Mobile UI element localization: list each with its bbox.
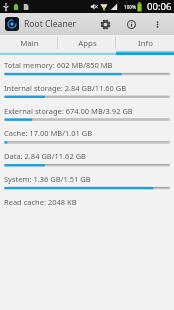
- staticText: Apps: [78, 38, 97, 49]
- button[interactable]: System: 1.36 GB/1.51 GB: [0, 169, 174, 192]
- staticText: 00:06: [147, 0, 172, 13]
- button[interactable]: Cache: 17.00 MB/1.01 GB: [0, 123, 174, 146]
- staticText: Cache: 17.00 MB/1.01 GB: [4, 128, 93, 138]
- button[interactable]: Apps: [58, 35, 116, 55]
- button[interactable]: Settings: [92, 13, 118, 35]
- staticText: 100%: [124, 4, 137, 10]
- staticText: System: 1.36 GB/1.51 GB: [4, 174, 91, 184]
- button[interactable]: Main: [0, 35, 58, 55]
- button[interactable]: More options: [144, 13, 170, 35]
- staticText: External storage: 674.00 MB/3.92 GB: [4, 106, 133, 116]
- button[interactable]: Data: 2.84 GB/11.62 GB: [0, 146, 174, 169]
- button[interactable]: App icon: [5, 17, 19, 31]
- button[interactable]: Read cache: 2048 KB: [0, 192, 174, 215]
- button[interactable]: Info: [116, 35, 174, 55]
- button[interactable]: Total memory: 602 MB/850 MB: [0, 55, 174, 78]
- staticText: Internal storage: 2.84 GB/11.60 GB: [4, 83, 127, 93]
- staticText: Main: [20, 38, 39, 49]
- staticText: Data: 2.84 GB/11.62 GB: [4, 151, 86, 161]
- button[interactable]: External storage: 674.00 MB/3.92 GB: [0, 101, 174, 124]
- staticText: Info: [138, 38, 153, 49]
- button[interactable]: Internal storage: 2.84 GB/11.60 GB: [0, 78, 174, 101]
- button[interactable]: Info: [118, 13, 144, 35]
- staticText: Total memory: 602 MB/850 MB: [4, 60, 113, 70]
- staticText: Root Cleaner: [24, 18, 77, 30]
- staticText: Read cache: 2048 KB: [4, 197, 77, 207]
